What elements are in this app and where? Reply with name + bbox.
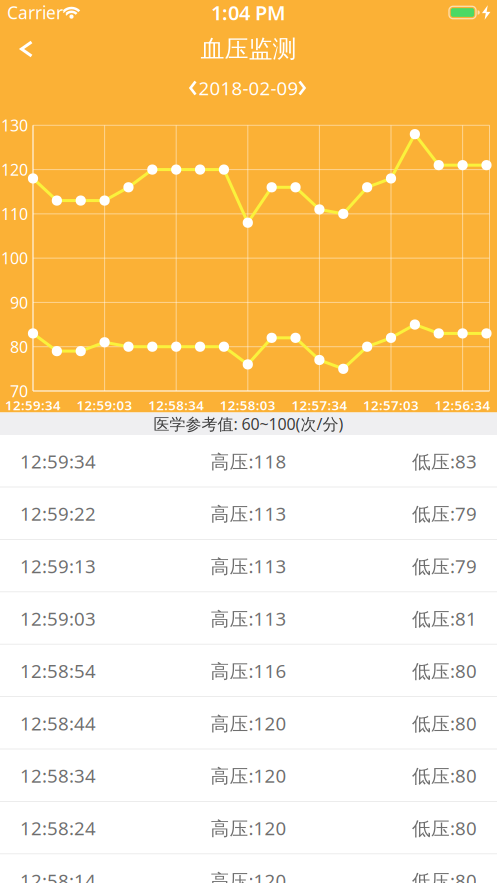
staticText: 低压:80: [412, 868, 477, 883]
staticText: 12:59:03: [20, 606, 96, 631]
staticText: 130: [1, 115, 28, 136]
staticText: 120: [1, 159, 28, 180]
staticText: 高压:120: [210, 711, 286, 736]
button[interactable]: 12:59:03: [0, 592, 497, 645]
staticText: 高压:113: [210, 501, 286, 526]
staticText: 12:58:14: [20, 868, 96, 883]
button[interactable]: 12:59:13: [0, 540, 497, 592]
staticText: 80: [10, 336, 28, 357]
staticText: 12:59:34: [20, 449, 96, 474]
staticText: 12:56:34: [435, 396, 491, 414]
staticText: 12:57:34: [291, 396, 347, 414]
staticText: 12:59:03: [77, 396, 133, 414]
staticText: 低压:81: [412, 606, 477, 631]
staticText: 1:04 PM: [211, 0, 286, 26]
button[interactable]: 12:59:34: [0, 435, 497, 487]
staticText: 2018-02-09: [198, 76, 298, 100]
staticText: 高压:113: [210, 606, 286, 631]
button[interactable]: [4, 32, 48, 66]
staticText: 低压:79: [412, 554, 477, 578]
staticText: 70: [10, 380, 28, 402]
staticText: 12:58:24: [20, 816, 96, 840]
staticText: 低压:79: [412, 501, 477, 526]
staticText: 90: [10, 292, 28, 313]
staticText: 低压:80: [412, 816, 477, 840]
staticText: 高压:113: [210, 554, 286, 578]
staticText: 12:59:22: [20, 501, 96, 526]
staticText: 12:58:44: [20, 711, 96, 736]
staticText: 高压:120: [210, 763, 286, 788]
staticText: 低压:80: [412, 658, 477, 683]
button[interactable]: 12:58:14: [0, 854, 497, 883]
staticText: 12:58:54: [20, 658, 96, 683]
staticText: 12:58:34: [148, 396, 204, 414]
staticText: 血压监测: [200, 34, 296, 64]
staticText: 12:57:03: [363, 396, 419, 414]
button[interactable]: 12:58:54: [0, 645, 497, 697]
staticText: 高压:120: [210, 816, 286, 840]
button[interactable]: 12:58:44: [0, 697, 497, 749]
button[interactable]: 12:58:34: [0, 749, 497, 802]
staticText: 高压:118: [210, 449, 286, 474]
staticText: 高压:116: [210, 658, 286, 683]
staticText: 100: [1, 247, 28, 269]
button[interactable]: [287, 76, 317, 100]
staticText: 低压:83: [412, 449, 477, 474]
button[interactable]: 12:59:22: [0, 487, 497, 540]
staticText: 低压:80: [412, 711, 477, 736]
staticText: 医学参考值: 60~100(次/分): [153, 413, 343, 434]
staticText: 12:59:13: [20, 554, 96, 578]
staticText: 110: [1, 203, 28, 224]
staticText: 12:58:34: [20, 763, 96, 788]
staticText: 低压:80: [412, 763, 477, 788]
staticText: 高压:120: [210, 868, 286, 883]
button[interactable]: 12:58:24: [0, 802, 497, 854]
staticText: 12:58:03: [220, 396, 276, 414]
button[interactable]: [178, 76, 208, 100]
staticText: 12:59:34: [5, 396, 61, 414]
staticText: Carrier: [7, 1, 63, 24]
